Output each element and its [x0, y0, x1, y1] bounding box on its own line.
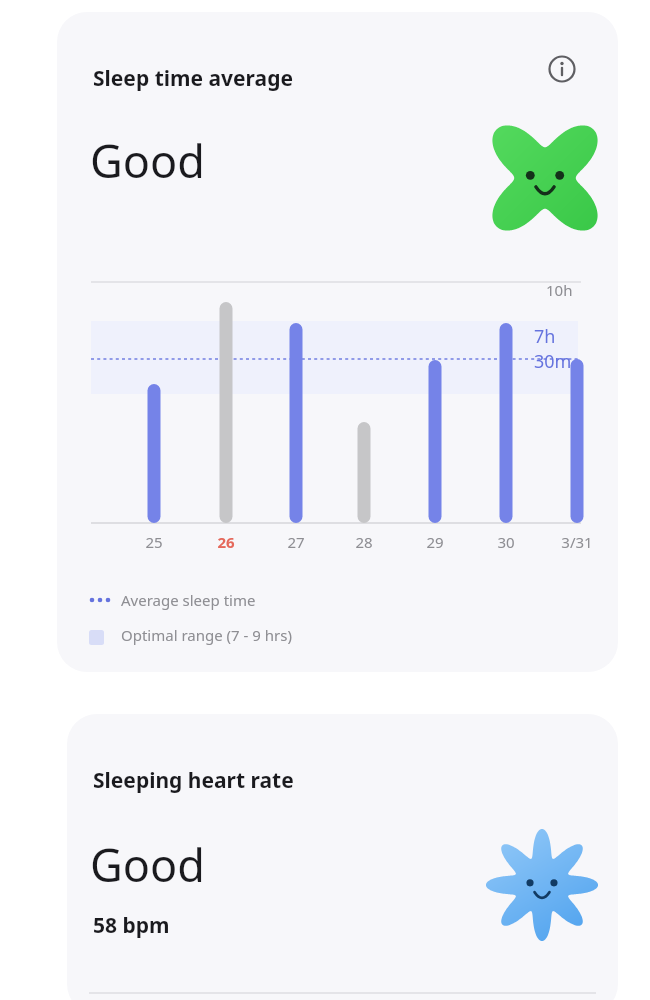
staticText: 30 [479, 532, 533, 558]
staticText: Sleep time average [93, 64, 293, 93]
button[interactable]: Info [537, 44, 587, 94]
staticText: 28 [337, 532, 391, 558]
button[interactable]: Sleep time average [57, 12, 618, 672]
staticText: Good [90, 834, 205, 895]
staticText: Average sleep time [121, 590, 256, 610]
staticText: 30m [534, 349, 572, 374]
staticText: 10h [546, 280, 573, 300]
staticText: 27 [269, 532, 323, 558]
staticText: 25 [127, 532, 181, 558]
staticText: 3/31 [550, 532, 604, 558]
staticText: Sleeping heart rate [93, 766, 294, 795]
button[interactable]: Sleeping heart rate [67, 714, 618, 1000]
staticText: 29 [408, 532, 462, 558]
staticText: 7h [534, 324, 556, 349]
staticText: Optimal range (7 - 9 hrs) [121, 625, 292, 645]
staticText: Good [90, 130, 205, 191]
staticText: 26 [199, 532, 253, 558]
staticText: 58 bpm [93, 911, 170, 940]
